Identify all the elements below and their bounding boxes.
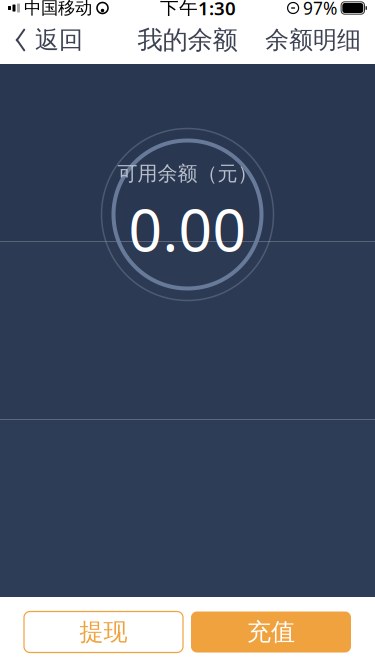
staticText: 下午1:30 bbox=[160, 0, 236, 20]
staticText: 97% bbox=[303, 0, 337, 19]
button[interactable]: 充值 bbox=[191, 611, 351, 652]
staticText: 余额明细 bbox=[265, 25, 361, 55]
button[interactable]: 提现 bbox=[24, 611, 183, 652]
staticText: 提现 bbox=[79, 617, 127, 647]
staticText: 0.00 bbox=[128, 190, 246, 268]
button[interactable]: 返回 bbox=[0, 16, 97, 64]
staticText: 可用余额（元） bbox=[117, 161, 257, 186]
staticText: 我的余额 bbox=[137, 24, 237, 55]
staticText: 中国移动 bbox=[24, 0, 92, 19]
button[interactable]: 余额明细 bbox=[251, 16, 375, 64]
staticText: 充值 bbox=[247, 617, 295, 647]
staticText: 返回 bbox=[35, 25, 83, 55]
